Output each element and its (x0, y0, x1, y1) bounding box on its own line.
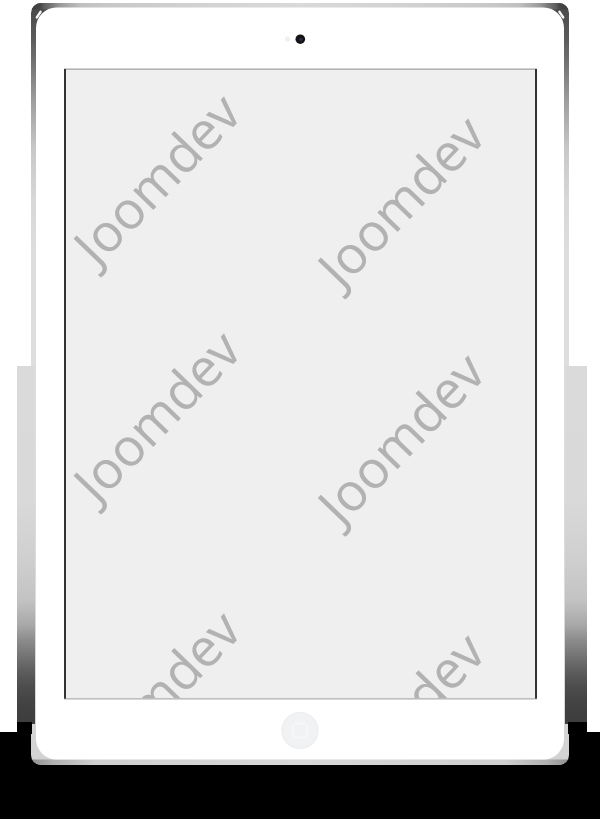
button[interactable]: Tablet device mock-up (0, 0, 600, 819)
